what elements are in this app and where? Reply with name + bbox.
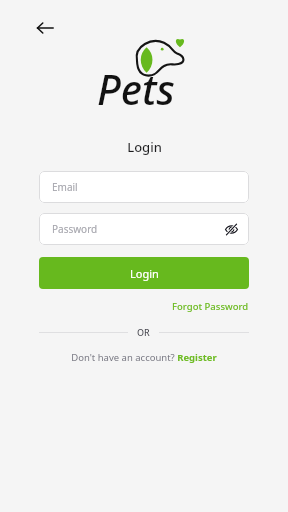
staticText: Login: [130, 266, 159, 281]
staticText: Email: [52, 180, 78, 194]
staticText: Don't have an account? Register: [71, 351, 217, 364]
button[interactable]: Toggle password visibility: [220, 218, 242, 240]
staticText: Password: [52, 222, 98, 236]
button[interactable]: Forgot Password: [172, 298, 249, 315]
button[interactable]: Don't have an account? Register: [65, 349, 223, 366]
staticText: Forgot Password: [172, 300, 249, 313]
button[interactable]: Email: [39, 171, 249, 203]
staticText: Pets: [97, 61, 175, 117]
button[interactable]: Login: [39, 257, 249, 289]
staticText: Login: [127, 138, 162, 156]
staticText: OR: [137, 326, 150, 338]
button[interactable]: Password: [39, 213, 249, 245]
button[interactable]: Back: [28, 11, 62, 45]
